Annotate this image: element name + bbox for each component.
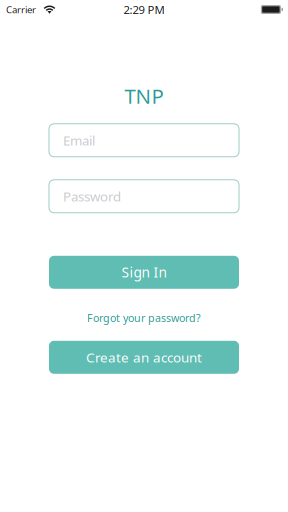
staticText: Sign In bbox=[121, 263, 166, 282]
staticText: TNP bbox=[124, 82, 163, 110]
button[interactable]: Sign In bbox=[49, 256, 239, 289]
staticText: 2:29 PM bbox=[123, 2, 164, 17]
button[interactable]: Create an account bbox=[49, 341, 239, 374]
button[interactable]: Forgot your password? bbox=[49, 309, 239, 327]
staticText: Password bbox=[63, 187, 121, 205]
staticText: Create an account bbox=[86, 348, 202, 366]
staticText: Forgot your password? bbox=[87, 310, 201, 325]
staticText: Carrier bbox=[6, 3, 36, 16]
staticText: Email bbox=[63, 131, 95, 149]
